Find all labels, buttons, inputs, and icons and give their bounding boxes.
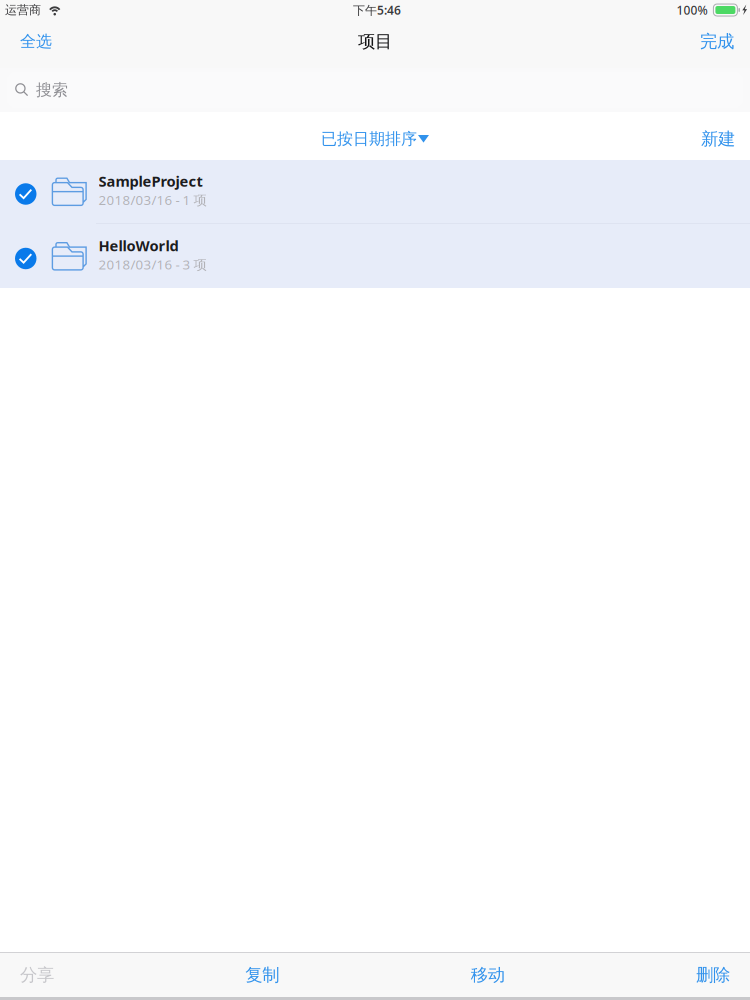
staticText: 2018/03/16 - 3 项: [98, 255, 206, 273]
staticText: 100%: [676, 2, 707, 18]
staticText: 2018/03/16 - 1 项: [98, 191, 206, 209]
staticText: 移动: [471, 964, 505, 986]
button[interactable]: 完成: [684, 21, 750, 67]
staticText: HelloWorld: [98, 236, 178, 255]
staticText: 搜索: [36, 80, 68, 100]
button[interactable]: 删除: [690, 951, 736, 998]
staticText: 运营商: [5, 3, 41, 17]
staticText: 下午5:46: [353, 2, 401, 18]
button[interactable]: 全选: [0, 21, 72, 67]
button[interactable]: 已按日期排序: [311, 114, 439, 158]
staticText: 完成: [700, 31, 734, 52]
staticText: 复制: [245, 964, 279, 986]
staticText: 新建: [701, 128, 735, 150]
staticText: 全选: [20, 32, 52, 51]
staticText: 已按日期排序: [321, 129, 417, 149]
staticText: 项目: [358, 31, 392, 52]
button[interactable]: 移动: [465, 951, 511, 998]
button[interactable]: 复制: [239, 951, 285, 998]
button[interactable]: 新建: [686, 114, 750, 158]
button[interactable]: SampleProject: [0, 160, 750, 224]
staticText: SampleProject: [98, 171, 202, 191]
staticText: 删除: [696, 964, 730, 986]
button[interactable]: 分享: [14, 951, 60, 998]
button[interactable]: HelloWorld: [0, 224, 750, 288]
staticText: 分享: [20, 964, 54, 986]
